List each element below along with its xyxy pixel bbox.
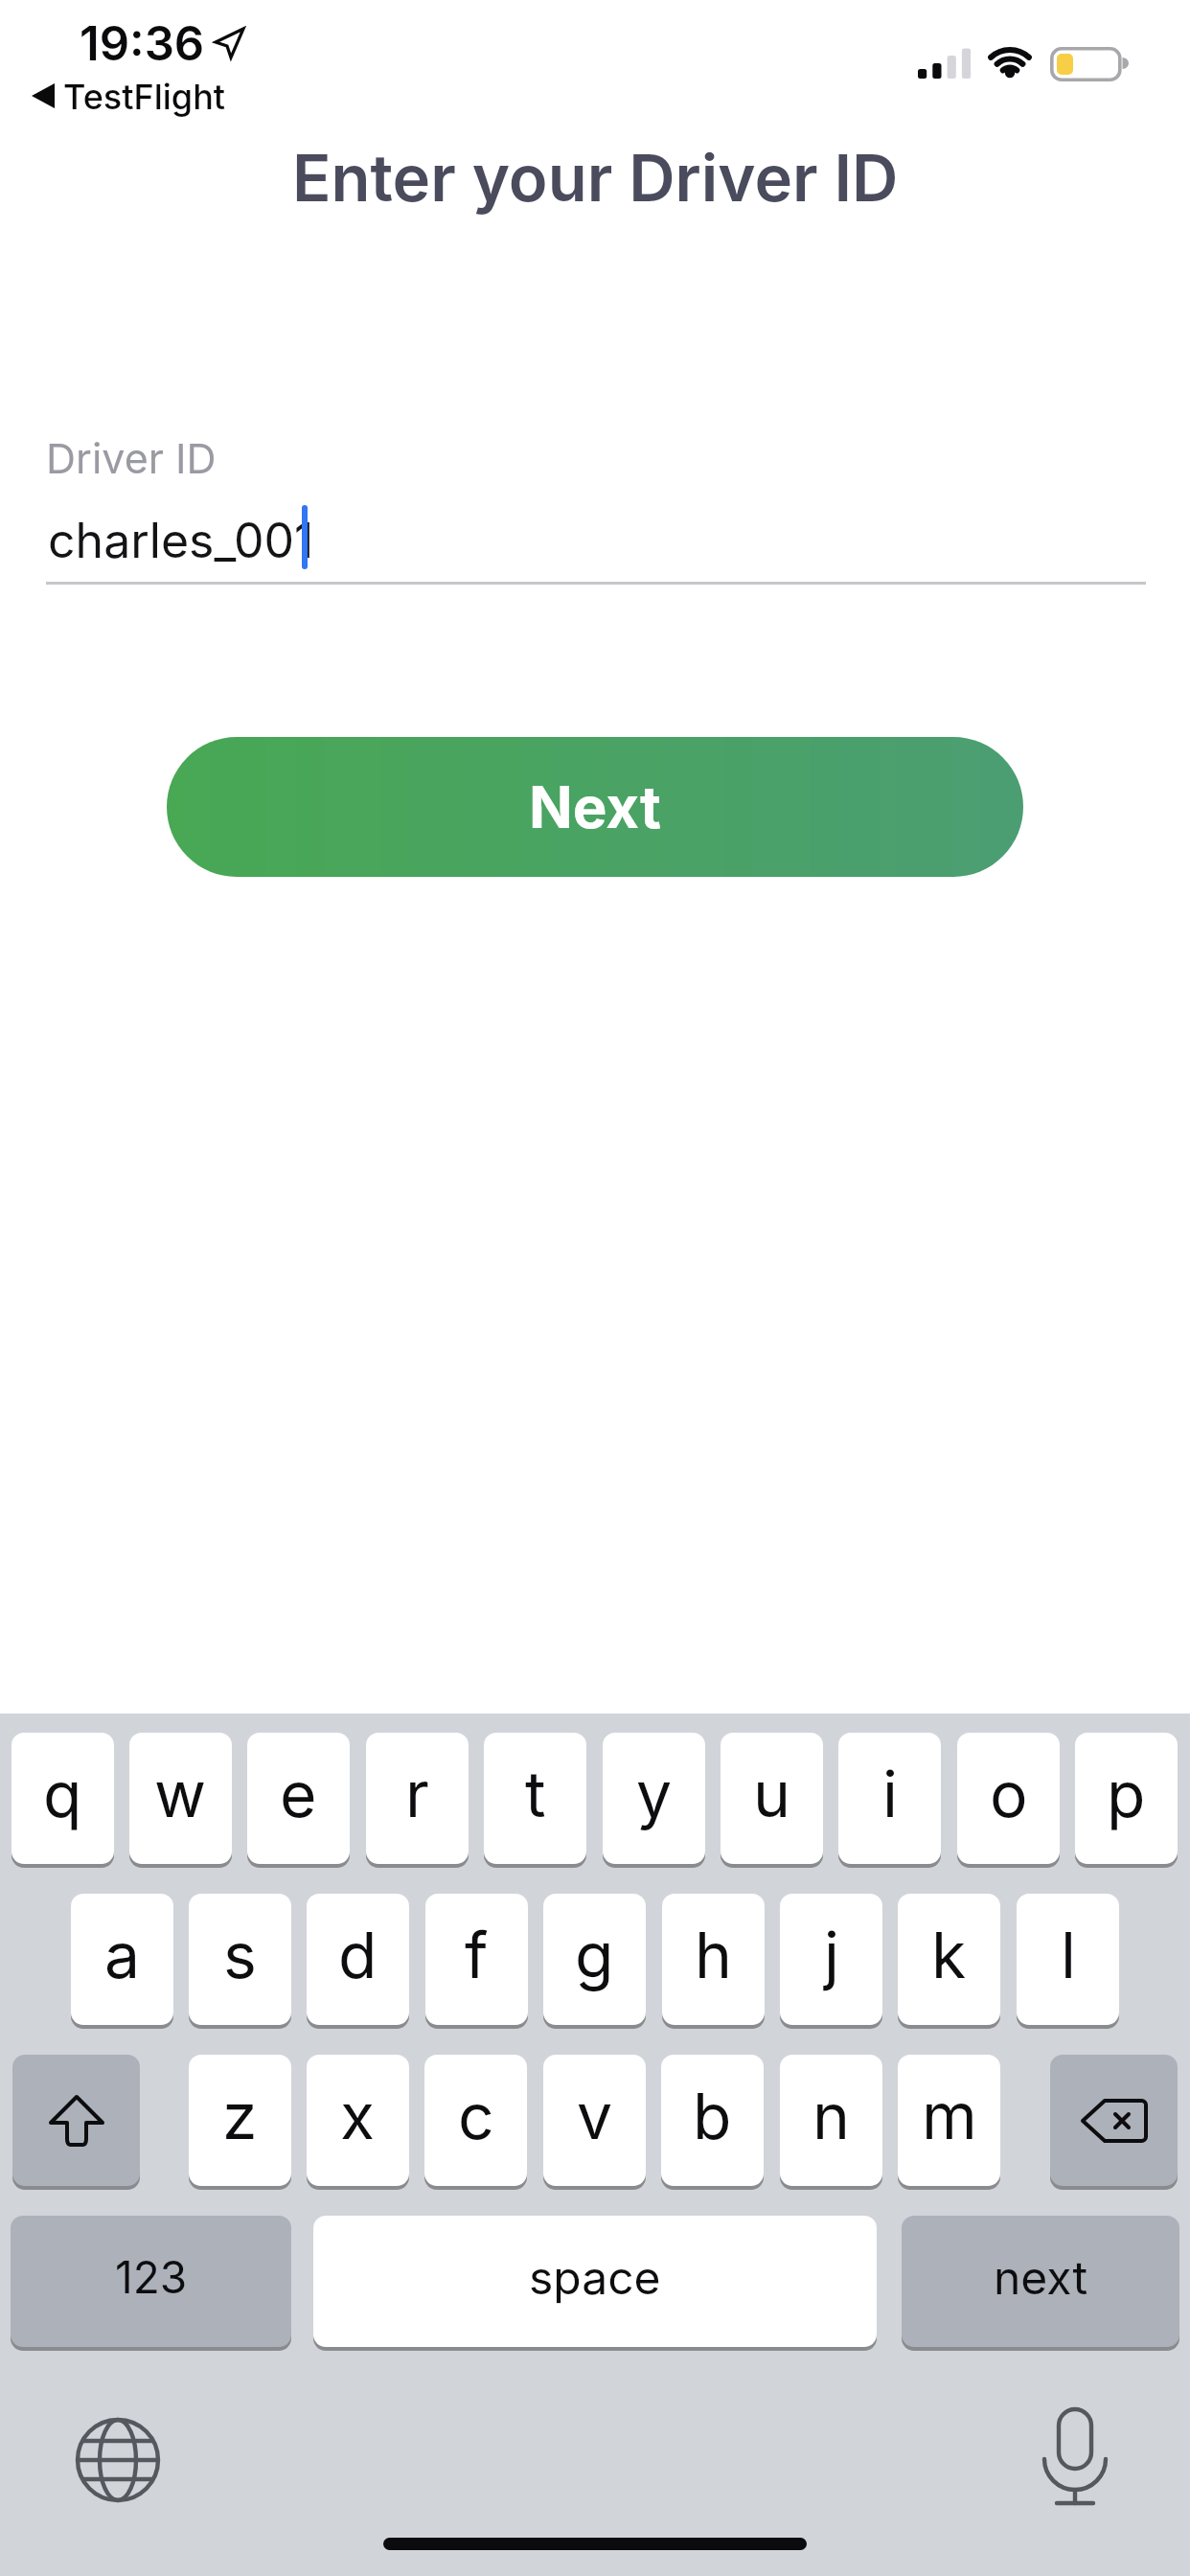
staticText: j: [824, 1917, 839, 1993]
staticText: space: [529, 2249, 661, 2305]
button[interactable]: n: [780, 2055, 882, 2186]
button[interactable]: TestFlight: [63, 76, 226, 118]
staticText: charles_001: [48, 512, 314, 569]
staticText: w: [154, 1756, 207, 1832]
staticText: x: [340, 2078, 376, 2154]
button[interactable]: h: [662, 1894, 765, 2025]
button[interactable]: [12, 2055, 140, 2186]
staticText: s: [223, 1917, 257, 1993]
staticText: c: [458, 2078, 494, 2154]
staticText: r: [405, 1756, 429, 1832]
button[interactable]: Next: [167, 737, 1023, 877]
button[interactable]: k: [898, 1894, 1000, 2025]
staticText: z: [222, 2078, 258, 2154]
staticText: y: [636, 1756, 673, 1832]
button[interactable]: f: [425, 1894, 528, 2025]
button[interactable]: c: [424, 2055, 527, 2186]
button[interactable]: r: [366, 1733, 469, 1864]
staticText: t: [525, 1756, 546, 1832]
staticText: v: [577, 2078, 613, 2154]
staticText: f: [465, 1917, 489, 1993]
button[interactable]: d: [307, 1894, 409, 2025]
button[interactable]: [1032, 2405, 1118, 2520]
button[interactable]: space: [313, 2216, 877, 2347]
staticText: q: [43, 1756, 82, 1832]
button[interactable]: j: [780, 1894, 882, 2025]
staticText: d: [338, 1917, 378, 1993]
staticText: next: [994, 2249, 1088, 2305]
button[interactable]: o: [957, 1733, 1060, 1864]
staticText: Enter your Driver ID: [292, 139, 899, 217]
button[interactable]: q: [11, 1733, 114, 1864]
staticText: Next: [529, 772, 661, 842]
button[interactable]: g: [543, 1894, 646, 2025]
button[interactable]: x: [307, 2055, 409, 2186]
staticText: o: [990, 1756, 1028, 1832]
button[interactable]: b: [661, 2055, 764, 2186]
staticText: k: [931, 1917, 967, 1993]
button[interactable]: [1050, 2055, 1178, 2186]
staticText: h: [695, 1917, 733, 1993]
staticText: a: [104, 1917, 141, 1993]
staticText: p: [1107, 1756, 1146, 1832]
button[interactable]: a: [71, 1894, 173, 2025]
button[interactable]: m: [898, 2055, 1000, 2186]
staticText: n: [812, 2078, 850, 2154]
staticText: i: [882, 1756, 898, 1832]
staticText: g: [575, 1917, 614, 1993]
staticText: 123: [115, 2250, 188, 2304]
button[interactable]: next: [902, 2216, 1179, 2347]
button[interactable]: p: [1075, 1733, 1178, 1864]
button[interactable]: y: [603, 1733, 705, 1864]
staticText: TestFlight: [63, 76, 226, 118]
staticText: Driver ID: [46, 433, 217, 483]
button[interactable]: [75, 2417, 161, 2503]
button[interactable]: u: [721, 1733, 823, 1864]
button[interactable]: z: [189, 2055, 291, 2186]
staticText: m: [922, 2078, 977, 2154]
button[interactable]: 123: [11, 2216, 291, 2347]
button[interactable]: w: [129, 1733, 232, 1864]
button[interactable]: e: [247, 1733, 350, 1864]
staticText: l: [1061, 1917, 1076, 1993]
button[interactable]: v: [543, 2055, 646, 2186]
staticText: u: [753, 1756, 791, 1832]
button[interactable]: i: [838, 1733, 941, 1864]
staticText: 19:36: [80, 15, 205, 72]
staticText: e: [280, 1756, 317, 1832]
staticText: b: [693, 2078, 732, 2154]
button[interactable]: l: [1017, 1894, 1119, 2025]
button[interactable]: t: [484, 1733, 586, 1864]
button[interactable]: s: [189, 1894, 291, 2025]
